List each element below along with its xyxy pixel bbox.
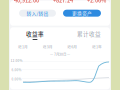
staticText: 近1月	[18, 44, 28, 49]
button[interactable]: 近3月	[43, 44, 53, 49]
staticText: 近3月	[43, 44, 53, 49]
staticText: 近6月	[67, 44, 77, 49]
staticText: 转入/转出	[26, 10, 48, 17]
staticText: 收益率	[26, 30, 44, 38]
button[interactable]: 近1年	[92, 44, 102, 49]
staticText: 0.00%	[11, 77, 21, 81]
staticText: 近1年	[92, 44, 102, 49]
staticText: +827.24	[53, 0, 73, 4]
button[interactable]: 转入/转出	[19, 10, 56, 17]
button[interactable]: 近1月	[18, 44, 28, 49]
staticText: 累计收益	[77, 30, 101, 38]
button[interactable]: 累计收益	[77, 30, 101, 40]
staticText: 12.00%	[10, 58, 22, 63]
staticText: 40,912.00	[14, 0, 39, 4]
staticText: 6.00%	[11, 68, 21, 72]
button[interactable]: 更换资产	[63, 10, 101, 17]
button[interactable]: 收益率	[23, 30, 47, 40]
staticText: — 7月30日 —	[50, 52, 70, 57]
staticText: +2.06%	[87, 0, 106, 4]
staticText: 更换资产	[72, 10, 92, 17]
button[interactable]: 近6月	[67, 44, 77, 49]
